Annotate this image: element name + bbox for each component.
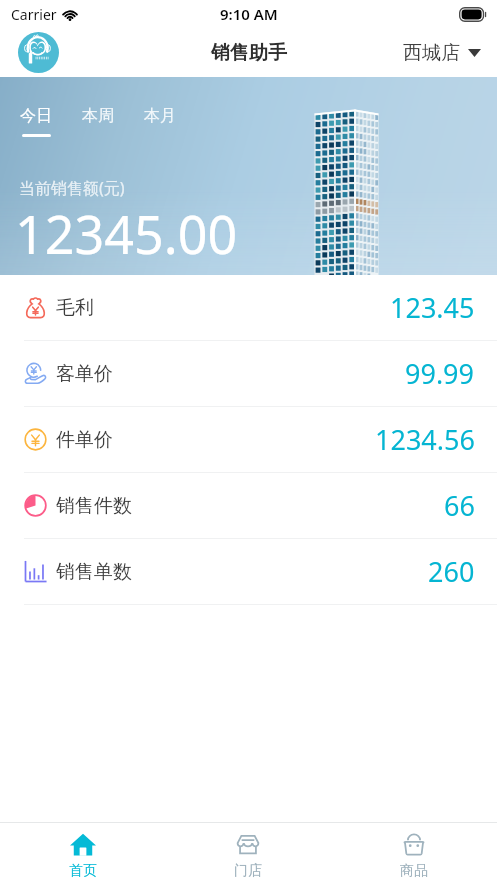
staticText: 123.45 — [390, 289, 475, 326]
button[interactable]: 商品 — [331, 823, 497, 883]
button[interactable]: 门店 — [165, 823, 331, 883]
button[interactable]: 本周 — [81, 106, 115, 137]
staticText: 商品 — [400, 862, 428, 880]
staticText: 销售单数 — [56, 560, 132, 584]
staticText: 260 — [428, 553, 475, 590]
button[interactable]: 今日 — [19, 106, 53, 137]
button[interactable]: 西城店 — [401, 35, 483, 71]
button[interactable]: 客单价 — [0, 341, 497, 406]
staticText: 12345.00 — [15, 198, 238, 269]
staticText: 当前销售额(元) — [19, 177, 125, 199]
staticText: 本月 — [144, 106, 176, 126]
button[interactable]: 件单价 — [0, 407, 497, 472]
button[interactable]: 销售单数 — [0, 539, 497, 604]
button[interactable]: Logo — [18, 32, 59, 73]
button[interactable]: 本月 — [143, 106, 177, 137]
staticText: 销售件数 — [56, 494, 132, 518]
staticText: 门店 — [234, 862, 262, 880]
staticText: Carrier — [11, 5, 57, 24]
staticText: 今日 — [20, 106, 52, 126]
staticText: 99.99 — [405, 355, 475, 392]
button[interactable]: 毛利 — [0, 275, 497, 340]
staticText: 客单价 — [56, 362, 113, 386]
staticText: 西城店 — [403, 41, 460, 65]
staticText: 毛利 — [56, 296, 94, 320]
staticText: 66 — [444, 487, 475, 524]
staticText: 1234.56 — [375, 421, 475, 458]
button[interactable]: 首页 — [0, 823, 165, 883]
staticText: 首页 — [69, 862, 97, 880]
button[interactable]: 销售件数 — [0, 473, 497, 538]
staticText: 销售助手 — [211, 41, 287, 65]
staticText: 9:10 AM — [220, 4, 278, 24]
staticText: 件单价 — [56, 428, 113, 452]
staticText: 本周 — [82, 106, 114, 126]
